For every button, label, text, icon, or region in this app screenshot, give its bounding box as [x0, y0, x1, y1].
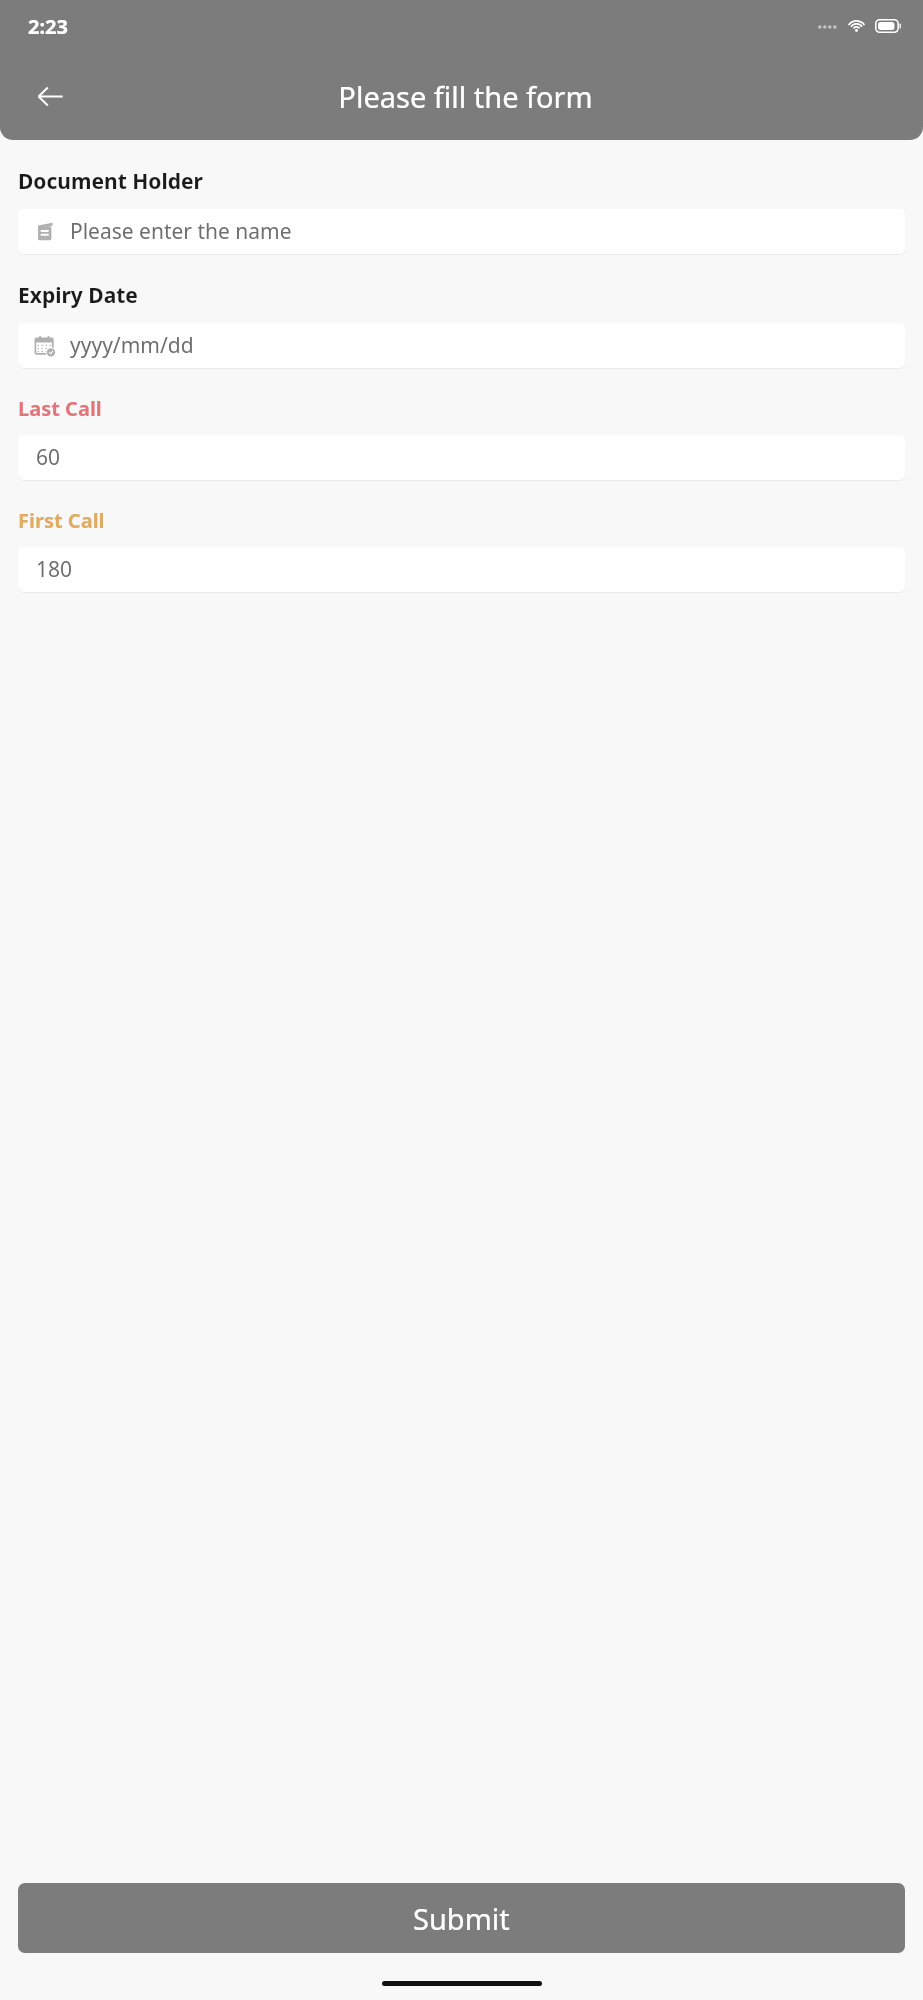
staticText: Submit — [413, 1899, 510, 1938]
button[interactable]: 60 — [18, 435, 905, 480]
staticText: 2:23 — [28, 13, 68, 40]
staticText: yyyy/mm/dd — [70, 331, 194, 360]
button[interactable]: yyyy/mm/dd — [18, 323, 905, 368]
staticText: Expiry Date — [18, 281, 138, 310]
button[interactable]: 180 — [18, 547, 905, 592]
staticText: Document Holder — [18, 167, 203, 196]
button[interactable]: Back — [22, 68, 78, 124]
staticText: Last Call — [18, 395, 102, 422]
staticText: 180 — [36, 555, 73, 584]
button[interactable]: Submit — [18, 1883, 905, 1953]
staticText: First Call — [18, 507, 105, 534]
staticText: 60 — [36, 443, 61, 472]
staticText: Please fill the form — [338, 77, 593, 116]
staticText: Please enter the name — [70, 217, 292, 246]
button[interactable]: Please enter the name — [18, 209, 905, 254]
